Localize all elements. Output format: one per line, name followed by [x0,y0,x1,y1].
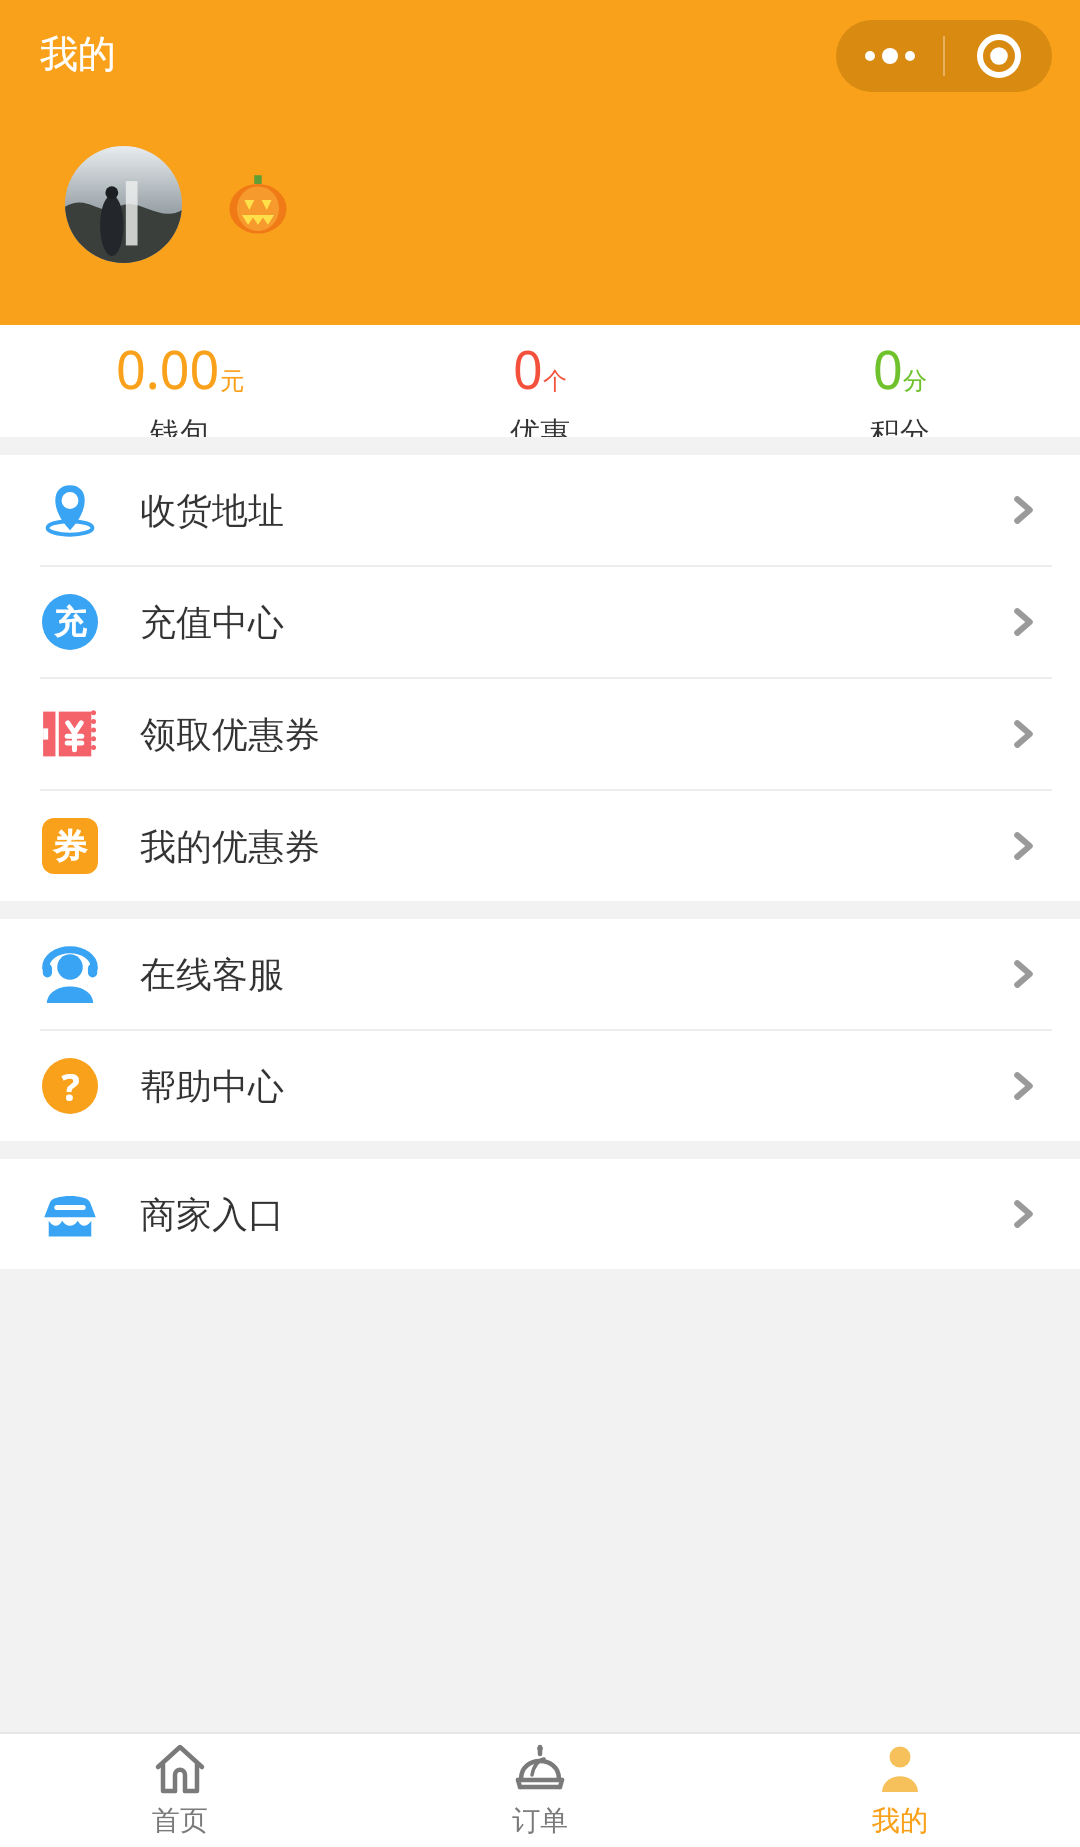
button[interactable]: 订单 [360,1734,720,1847]
button[interactable]: ? [0,1031,1080,1141]
button[interactable]: 领取优惠券 [0,679,1080,789]
staticText: 钱包 [150,414,210,437]
staticText: 充值中心 [140,600,284,645]
button[interactable]: 券 [0,791,1080,901]
button[interactable]: 充 [0,567,1080,677]
staticText: 我的 [872,1803,928,1838]
button[interactable]: 收货地址 [0,455,1080,565]
staticText: 元 [220,366,244,396]
staticText: 收货地址 [140,488,284,533]
staticText: 订单 [512,1803,568,1838]
staticText: 积分 [870,414,930,437]
staticText: 在线客服 [140,952,284,997]
staticText: 帮助中心 [140,1064,284,1109]
button[interactable]: More options [836,20,1052,92]
staticText: 优惠 [510,414,570,437]
staticText: 分 [903,366,927,396]
staticText: ? [61,1060,80,1112]
staticText: 个 [543,366,567,396]
button[interactable]: Profile photo [65,146,182,263]
button[interactable]: 首页 [0,1734,360,1847]
staticText: 领取优惠券 [140,712,320,757]
staticText: 商家入口 [140,1192,284,1237]
button[interactable]: 在线客服 [0,919,1080,1029]
button[interactable]: 我的 [720,1734,1080,1847]
button[interactable]: 商家入口 [0,1159,1080,1269]
staticText: 充 [54,602,86,642]
staticText: 0.00 [116,333,220,404]
button[interactable]: 0.00 [0,331,360,437]
staticText: 我的 [40,30,116,78]
staticText: 券 [53,825,87,868]
button[interactable]: 0 [360,331,720,437]
button[interactable]: 0 [720,331,1080,437]
staticText: 首页 [152,1803,208,1838]
staticText: 0 [873,333,903,404]
staticText: 0 [513,333,543,404]
staticText: 我的优惠券 [140,824,320,869]
